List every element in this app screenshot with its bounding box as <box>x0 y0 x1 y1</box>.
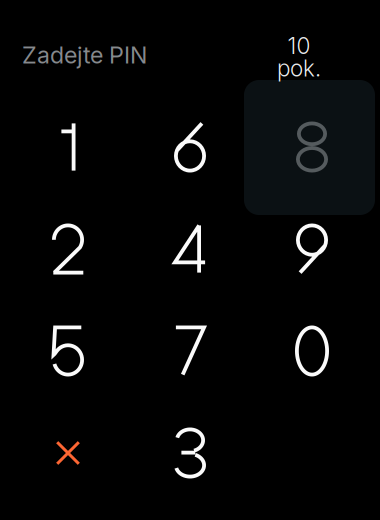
button[interactable] <box>129 402 251 504</box>
button[interactable] <box>251 96 373 198</box>
button[interactable] <box>129 96 251 198</box>
staticText: Zadejte PIN <box>22 41 147 69</box>
button[interactable] <box>251 198 373 300</box>
button[interactable] <box>7 198 129 300</box>
button[interactable] <box>251 300 373 402</box>
button[interactable] <box>7 96 129 198</box>
button[interactable] <box>129 198 251 300</box>
button[interactable] <box>7 300 129 402</box>
button[interactable] <box>129 300 251 402</box>
staticText: pok. <box>277 54 321 82</box>
staticText: 10 <box>287 32 310 59</box>
button[interactable]: Delete <box>7 402 129 504</box>
